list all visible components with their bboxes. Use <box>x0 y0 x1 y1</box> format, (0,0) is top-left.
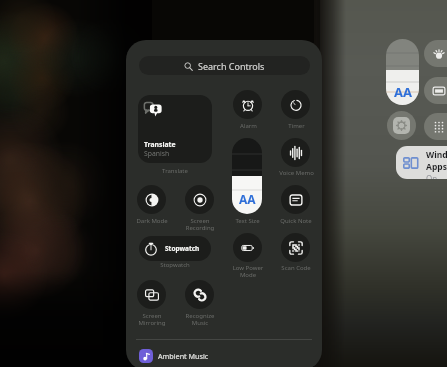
staticText: Timer <box>288 122 305 130</box>
staticText: Stopwatch <box>165 244 200 253</box>
staticText: Translate <box>144 140 176 149</box>
staticText: Windowed <box>426 149 447 161</box>
staticText: Scan Code <box>281 264 311 272</box>
button[interactable]: Control <box>424 40 447 67</box>
button[interactable]: Stopwatch <box>139 236 211 261</box>
staticText: Search Controls <box>198 60 265 72</box>
button[interactable]: Timer <box>281 90 310 119</box>
staticText: Quick Note <box>280 217 312 225</box>
button[interactable]: AA <box>232 138 262 214</box>
staticText: Recognize Music <box>184 312 216 327</box>
staticText: Screen Recording <box>185 217 215 232</box>
staticText: AA <box>394 83 412 101</box>
button[interactable]: Recognize Music <box>185 280 214 309</box>
button[interactable]: Scan Code <box>281 233 310 262</box>
staticText: Ambient Music <box>158 351 209 361</box>
button[interactable]: Ambient Music <box>136 345 312 367</box>
staticText: On <box>426 173 438 179</box>
button[interactable]: Voice Memo <box>281 138 310 167</box>
button[interactable]: Translate <box>138 95 212 163</box>
staticText: Screen Mirroring <box>136 312 168 327</box>
staticText: AA <box>239 191 256 207</box>
button[interactable]: Screen Recording <box>185 185 214 214</box>
staticText: Dark Mode <box>136 217 168 225</box>
button[interactable]: Control <box>424 77 447 104</box>
button[interactable]: AA <box>386 39 419 105</box>
staticText: Text Size <box>235 217 260 225</box>
staticText: Apps <box>426 161 447 173</box>
staticText: Low Power Mode <box>230 264 266 279</box>
staticText: Translate <box>162 167 188 175</box>
button[interactable]: Windowed <box>396 146 447 179</box>
button[interactable]: Dark Mode <box>137 185 166 214</box>
button[interactable]: Alarm <box>233 90 262 119</box>
button[interactable]: Settings <box>387 111 416 140</box>
button[interactable]: Control <box>424 113 447 140</box>
button[interactable]: Low Power Mode <box>233 233 262 262</box>
button[interactable]: Screen Mirroring <box>137 280 166 309</box>
staticText: Voice Memo <box>279 169 314 177</box>
staticText: Stopwatch <box>160 261 190 269</box>
staticText: Alarm <box>240 122 257 130</box>
button[interactable]: Search Controls <box>139 56 310 75</box>
button[interactable]: Quick Note <box>281 185 310 214</box>
staticText: Spanish <box>144 149 170 158</box>
